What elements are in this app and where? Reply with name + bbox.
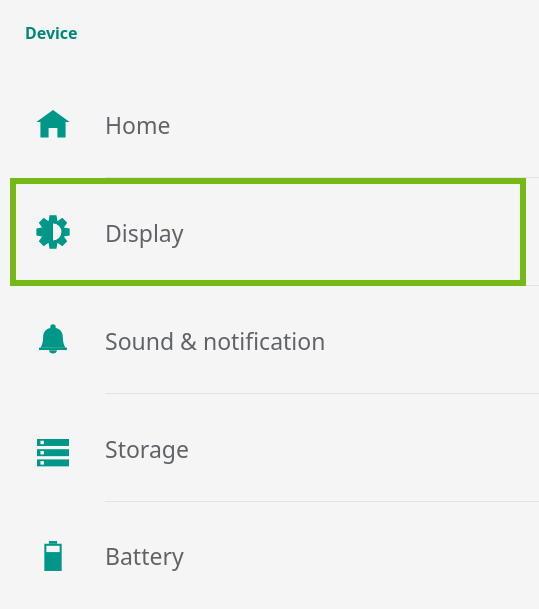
button[interactable]: Battery: [0, 502, 539, 609]
staticText: Sound & notification: [105, 325, 326, 356]
other: Home: [36, 107, 70, 141]
staticText: Home: [105, 109, 171, 140]
staticText: Display: [105, 217, 184, 248]
staticText: Battery: [105, 540, 184, 571]
staticText: Storage: [105, 433, 189, 464]
button[interactable]: Sound and notification: [0, 286, 539, 394]
other: Display: [36, 215, 70, 249]
button[interactable]: Home: [0, 70, 539, 178]
button[interactable]: Display: [0, 178, 539, 286]
staticText: Device: [25, 22, 78, 44]
other: Storage: [36, 431, 70, 465]
button[interactable]: Storage: [0, 394, 539, 502]
other: Sound and notification: [36, 323, 70, 357]
other: Battery: [36, 539, 70, 573]
